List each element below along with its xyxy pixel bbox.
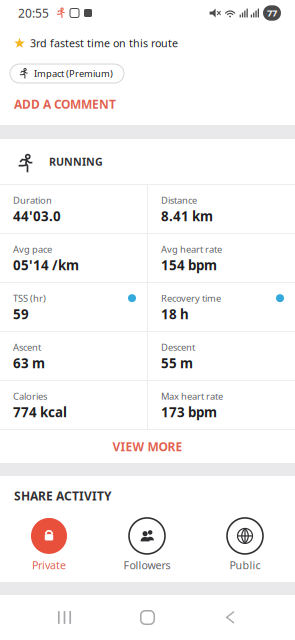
button[interactable]: ADD A COMMENT [0,83,295,125]
staticText: Recovery time [161,292,221,304]
staticText: 18 h [161,305,189,323]
button[interactable]: Impact (Premium) [10,64,124,83]
staticText: Private [32,558,66,572]
staticText: ADD A COMMENT [14,96,116,112]
staticText: SHARE ACTIVITY [14,488,112,504]
staticText: Avg heart rate [161,243,222,255]
staticText: 44'03.0 [13,207,61,225]
staticText: 55 m [161,354,193,372]
staticText: 3rd fastest time on this route [30,36,178,50]
staticText: 8.41 km [161,207,213,225]
staticText: 173 bpm [161,403,217,421]
staticText: 59 [13,305,29,323]
button[interactable]: Private [0,518,98,572]
staticText: 63 m [13,354,45,372]
staticText: Public [229,558,260,572]
button[interactable]: Followers [98,518,196,572]
staticText: 154 bpm [161,256,217,274]
button[interactable]: Recent apps [0,595,129,640]
button[interactable]: Public [196,518,294,572]
staticText: Max heart rate [161,390,223,402]
staticText: Calories [13,390,47,402]
staticText: TSS (hr) [13,292,46,304]
staticText: VIEW MORE [112,438,182,454]
staticText: Avg pace [13,243,52,255]
button[interactable]: Back [166,595,295,640]
staticText: Distance [161,194,197,206]
staticText: 77 [267,7,277,19]
staticText: 774 kcal [13,403,67,421]
staticText: Ascent [13,341,41,353]
staticText: 20:55 [18,5,49,21]
staticText: Followers [123,558,170,572]
staticText: Duration [13,194,52,206]
button[interactable]: VIEW MORE [0,430,295,463]
button[interactable]: Home [129,595,166,640]
staticText: Descent [161,341,195,353]
staticText: 05'14 /km [13,256,79,274]
staticText: Impact (Premium) [34,67,113,80]
staticText: RUNNING [49,154,103,169]
